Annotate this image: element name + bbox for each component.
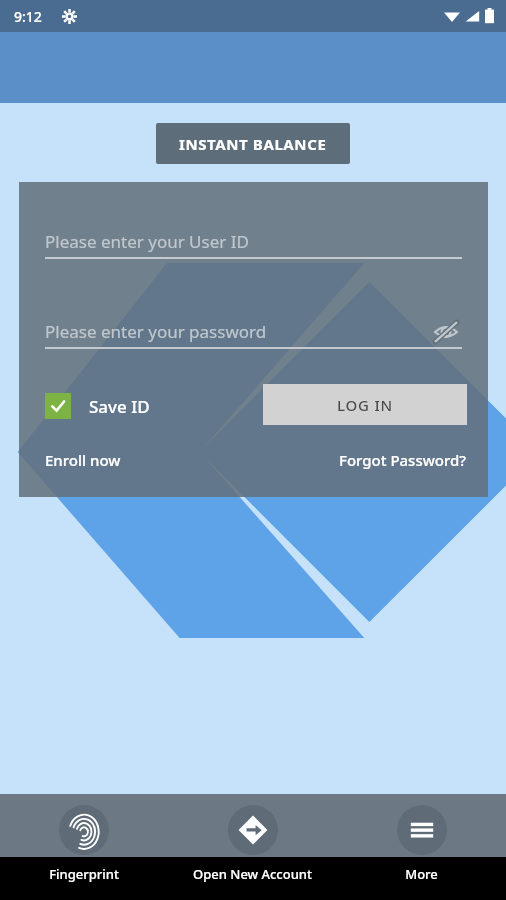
button[interactable]: LOG IN — [263, 384, 467, 425]
other: Open New Account — [238, 815, 268, 845]
button[interactable]: Forgot Password? — [339, 450, 467, 470]
button[interactable]: Save ID — [45, 388, 150, 424]
button[interactable]: Enroll now — [45, 450, 121, 470]
staticText: INSTANT BALANCE — [179, 134, 327, 154]
staticText: Fingerprint — [49, 865, 119, 883]
button[interactable]: Show password — [424, 310, 468, 354]
staticText: Forgot Password? — [339, 450, 467, 470]
staticText: LOG IN — [337, 395, 394, 415]
staticText: Enroll now — [45, 450, 121, 470]
staticText: 9:12 — [14, 7, 42, 26]
staticText: Open New Account — [193, 865, 312, 883]
button[interactable]: Open New Account — [168, 794, 337, 900]
button[interactable]: More — [337, 794, 506, 900]
staticText: Please enter your password — [45, 320, 267, 343]
staticText: Please enter your User ID — [45, 230, 249, 253]
other: More — [409, 817, 435, 843]
staticText: Save ID — [89, 395, 150, 418]
other: Fingerprint — [69, 815, 99, 845]
button[interactable]: INSTANT BALANCE — [156, 123, 350, 164]
button[interactable]: Fingerprint — [0, 794, 168, 900]
staticText: More — [405, 865, 438, 883]
